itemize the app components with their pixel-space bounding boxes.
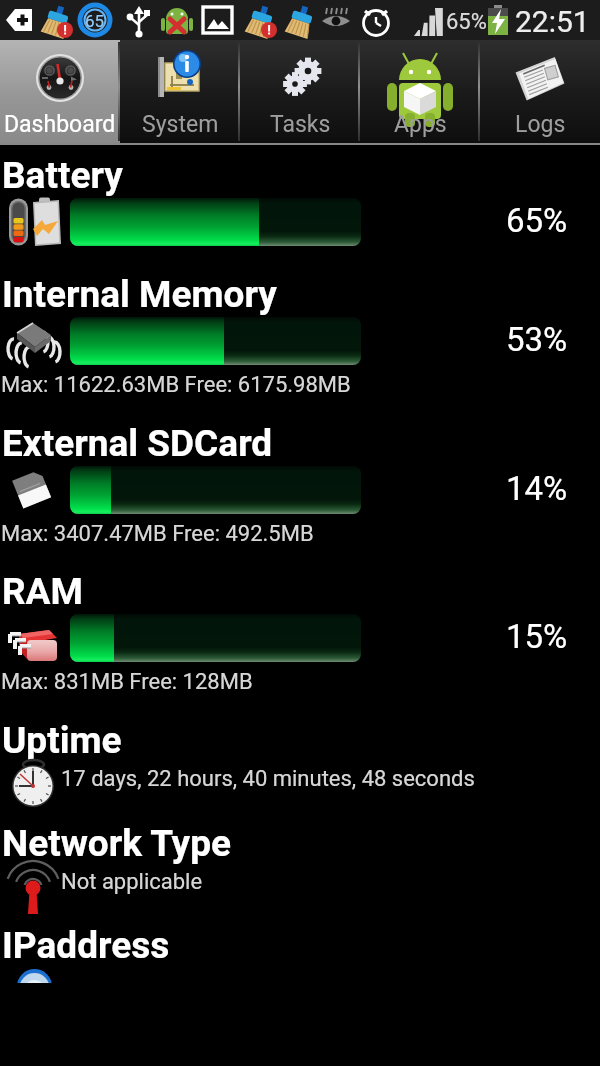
- staticText: Max: 11622.63MB Free: 6175.98MB: [1, 372, 351, 398]
- staticText: 65%: [506, 201, 568, 240]
- button[interactable]: IPaddress: [0, 924, 600, 984]
- staticText: Max: 831MB Free: 128MB: [1, 669, 253, 695]
- staticText: Tasks: [270, 111, 331, 138]
- staticText: Network Type: [2, 822, 231, 865]
- button[interactable]: Logs: [480, 40, 600, 143]
- staticText: Internal Memory: [2, 273, 277, 316]
- staticText: 15%: [506, 617, 568, 656]
- button[interactable]: RAM: [0, 570, 600, 680]
- staticText: Apps: [394, 111, 447, 138]
- staticText: 53%: [506, 320, 568, 359]
- button[interactable]: Apps: [360, 40, 480, 143]
- button[interactable]: Dashboard: [0, 40, 120, 143]
- button[interactable]: Internal Memory: [0, 273, 600, 383]
- staticText: 17 days, 22 hours, 40 minutes, 48 second…: [61, 766, 475, 792]
- button[interactable]: External SDCard: [0, 422, 600, 532]
- staticText: External SDCard: [2, 422, 273, 465]
- staticText: Battery: [2, 154, 123, 197]
- staticText: Dashboard: [4, 111, 116, 138]
- button[interactable]: Tasks: [240, 40, 360, 143]
- button[interactable]: Uptime: [0, 719, 600, 799]
- button[interactable]: System: [120, 40, 240, 143]
- staticText: 65%: [446, 9, 487, 35]
- staticText: 65: [85, 11, 105, 31]
- staticText: IPaddress: [2, 924, 170, 967]
- button[interactable]: Network Type: [0, 822, 600, 902]
- staticText: RAM: [2, 570, 83, 613]
- button[interactable]: Battery: [0, 154, 600, 264]
- staticText: 22:51: [515, 4, 590, 39]
- staticText: Max: 3407.47MB Free: 492.5MB: [1, 521, 314, 547]
- staticText: Logs: [515, 111, 566, 138]
- staticText: System: [142, 111, 219, 138]
- staticText: 14%: [506, 469, 568, 508]
- staticText: Uptime: [2, 719, 122, 762]
- staticText: Not applicable: [61, 869, 203, 895]
